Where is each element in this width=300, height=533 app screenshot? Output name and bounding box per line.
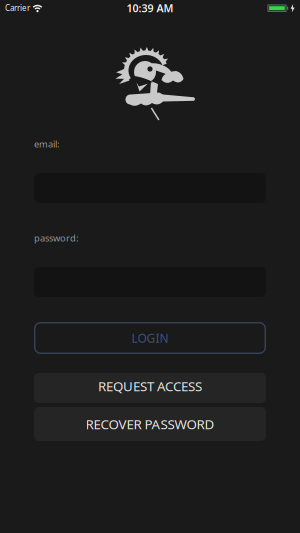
button[interactable]: RECOVER PASSWORD xyxy=(34,407,266,441)
staticText: Carrier xyxy=(5,3,30,13)
staticText: 10:39 AM xyxy=(126,1,173,15)
staticText: email: xyxy=(34,138,60,150)
staticText: LOGIN xyxy=(131,330,168,346)
staticText: RECOVER PASSWORD xyxy=(85,415,214,433)
staticText: password: xyxy=(34,232,79,244)
button[interactable]: REQUEST ACCESS xyxy=(34,373,266,403)
button[interactable]: LOGIN xyxy=(34,322,266,354)
staticText: REQUEST ACCESS xyxy=(98,377,202,395)
